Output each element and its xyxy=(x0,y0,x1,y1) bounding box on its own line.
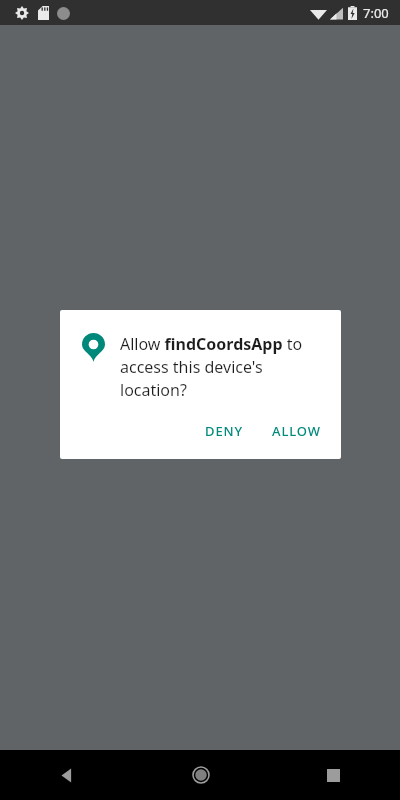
button[interactable]: Back xyxy=(0,750,134,800)
button[interactable]: Recent apps xyxy=(267,750,400,800)
staticText: ALLOW xyxy=(272,422,321,440)
staticText: DENY xyxy=(205,422,244,440)
button[interactable]: DENY xyxy=(195,413,254,449)
button[interactable]: Home xyxy=(134,750,267,800)
button[interactable]: ALLOW xyxy=(262,413,331,449)
staticText: 7:00 xyxy=(363,4,389,22)
staticText: Allow findCoordsApp to access this devic… xyxy=(120,333,321,401)
